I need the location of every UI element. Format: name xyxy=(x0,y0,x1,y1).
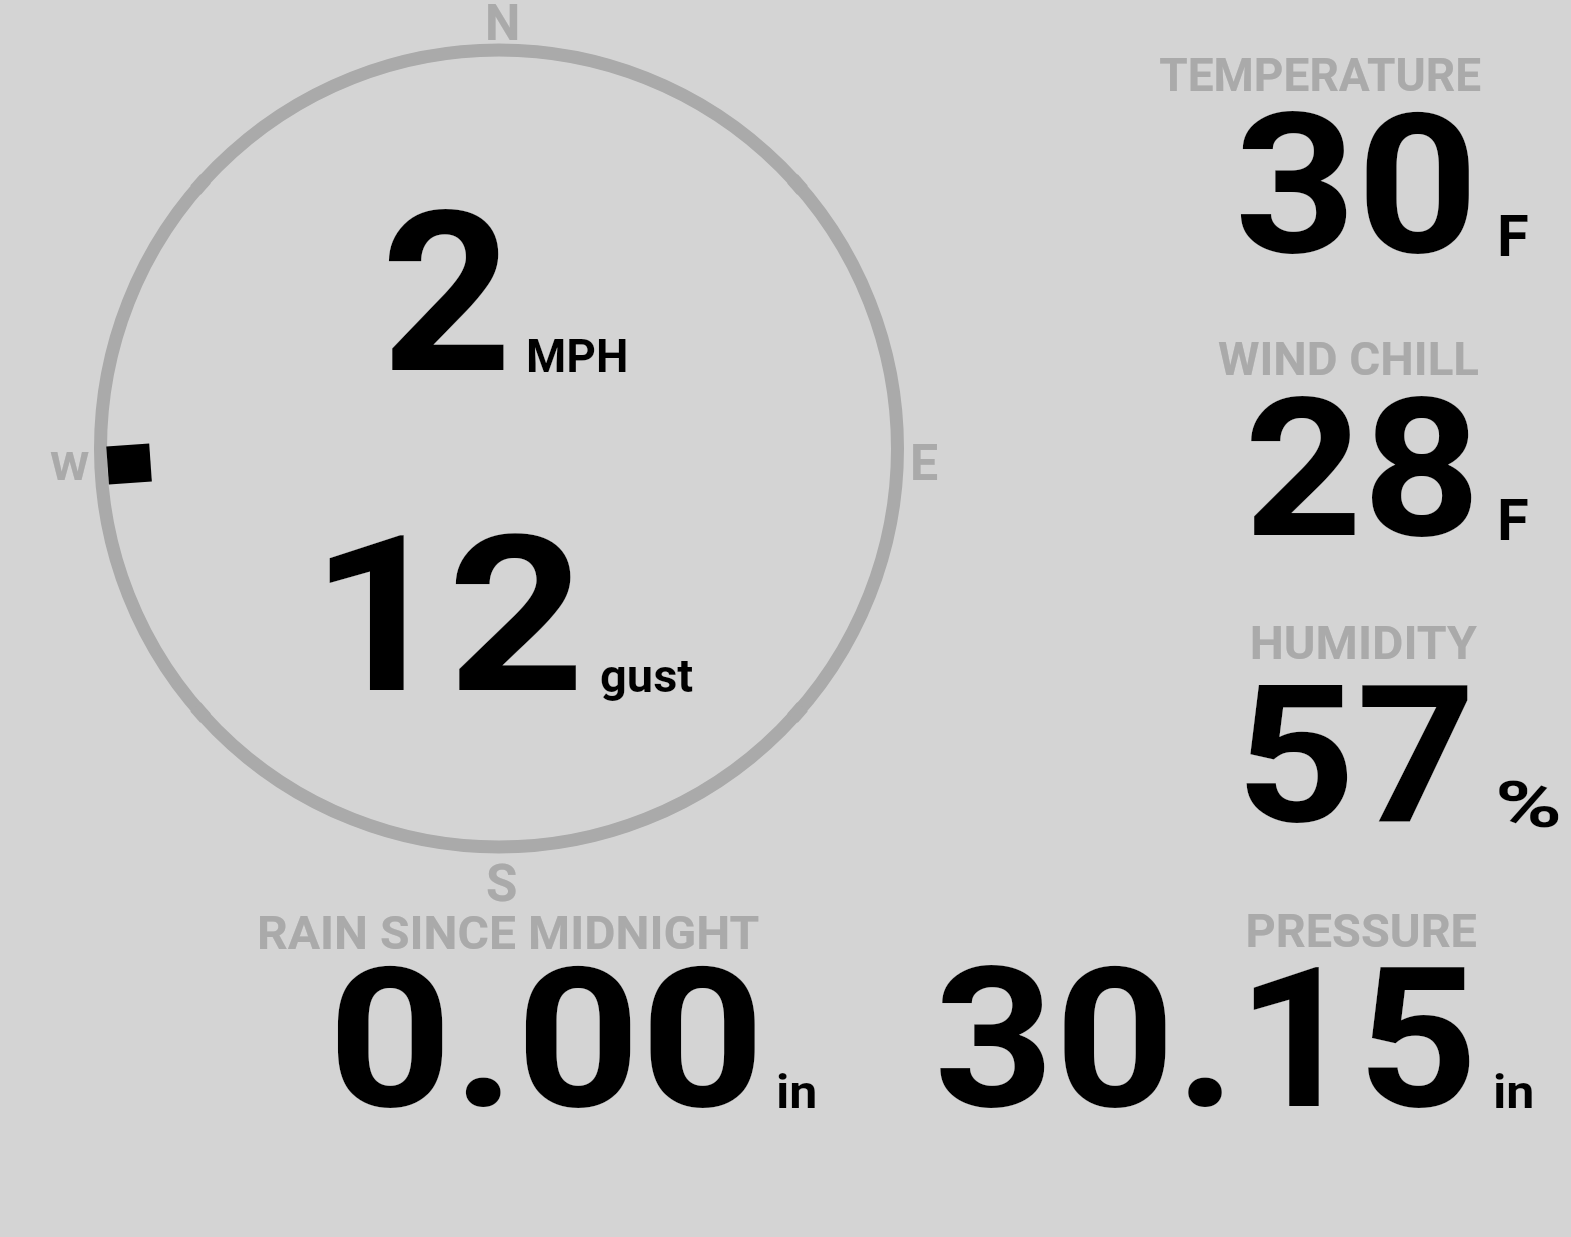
staticText: W xyxy=(50,445,90,490)
button[interactable]: Humidity 57 percent xyxy=(1050,590,1550,860)
staticText: E xyxy=(910,434,939,493)
staticText: F xyxy=(1497,202,1529,270)
staticText: HUMIDITY xyxy=(0,616,1477,1237)
button[interactable]: Wind chill 28 degrees Fahrenheit xyxy=(1050,300,1550,570)
staticText: PRESSURE xyxy=(0,904,1477,1237)
staticText: MPH xyxy=(526,329,629,383)
staticText: TEMPERATURE xyxy=(0,48,1481,1237)
staticText: 2 xyxy=(381,164,513,424)
button[interactable]: Wind compass, 2 miles per hour, gusting … xyxy=(60,0,1000,900)
staticText: in xyxy=(776,1064,818,1119)
staticText: gust xyxy=(600,648,694,703)
staticText: RAIN SINCE MIDNIGHT xyxy=(257,906,760,960)
staticText: N xyxy=(485,0,521,53)
staticText: WIND CHILL xyxy=(0,332,1479,1237)
staticText: 0.00 xyxy=(0,926,765,1237)
staticText: 12 xyxy=(310,488,586,743)
staticText: 30 xyxy=(0,72,1479,1237)
staticText: % xyxy=(1495,768,1563,843)
staticText: F xyxy=(1497,486,1529,554)
staticText: 30.15 xyxy=(0,926,1478,1237)
staticText: 28 xyxy=(0,356,1481,1237)
staticText: in xyxy=(1493,1064,1535,1119)
button[interactable]: Temperature 30 degrees Fahrenheit xyxy=(1050,20,1550,290)
button[interactable]: Rain since midnight 0.00 inches xyxy=(230,880,850,1130)
staticText: S xyxy=(486,854,518,914)
button[interactable]: Pressure 30.15 inches xyxy=(900,880,1550,1130)
staticText: 57 xyxy=(0,643,1476,1237)
